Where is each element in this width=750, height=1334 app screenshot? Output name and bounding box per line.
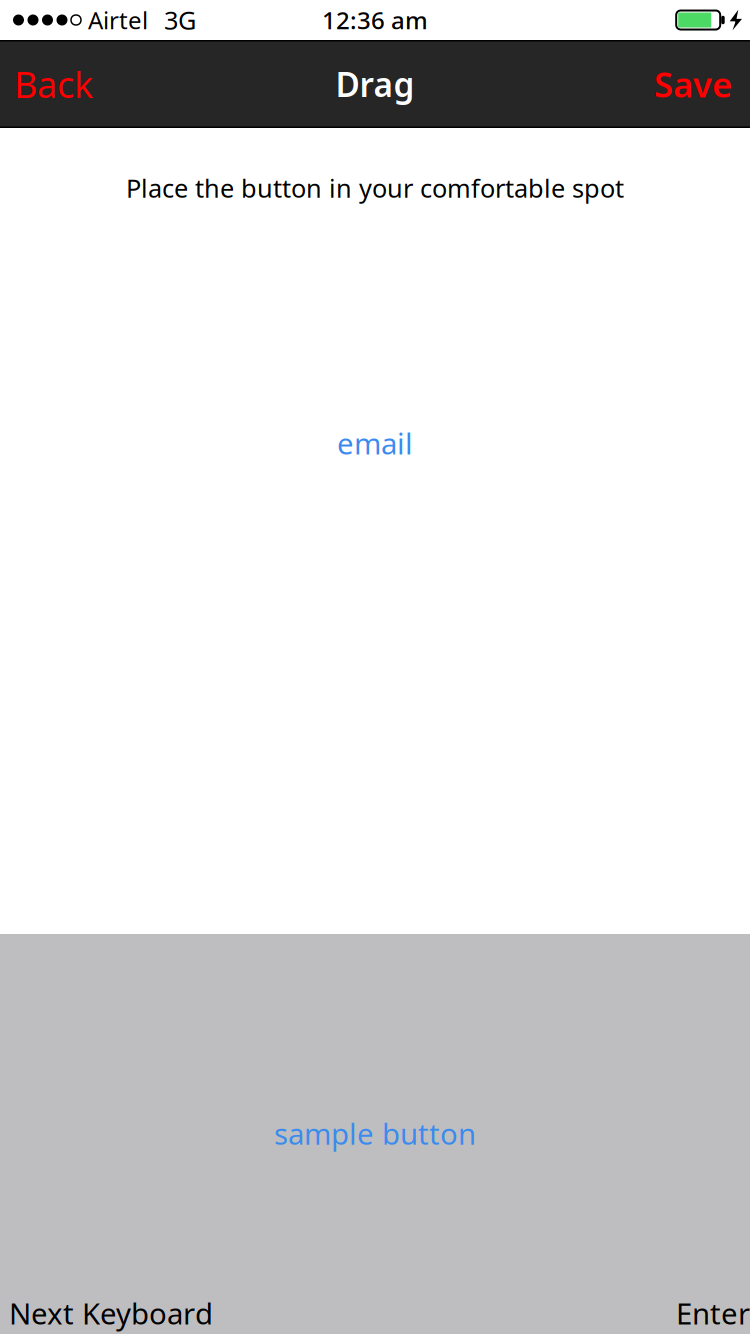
- button[interactable]: Save: [642, 40, 750, 128]
- staticText: Drag: [335, 62, 414, 106]
- button[interactable]: sample button: [260, 1105, 490, 1162]
- staticText: Enter: [676, 1293, 750, 1332]
- staticText: 3G: [164, 3, 196, 37]
- button[interactable]: Back: [0, 40, 105, 128]
- staticText: email: [337, 424, 413, 463]
- staticText: Back: [14, 60, 93, 108]
- staticText: Airtel: [88, 4, 148, 36]
- staticText: 12:36 am: [322, 4, 428, 36]
- staticText: Place the button in your comfortable spo…: [126, 171, 624, 205]
- staticText: Next Keyboard: [9, 1293, 213, 1332]
- staticText: Save: [654, 61, 732, 107]
- staticText: sample button: [274, 1114, 476, 1153]
- button[interactable]: Next Keyboard: [9, 1291, 225, 1334]
- button[interactable]: Enter: [664, 1291, 750, 1334]
- button[interactable]: email: [323, 415, 427, 472]
